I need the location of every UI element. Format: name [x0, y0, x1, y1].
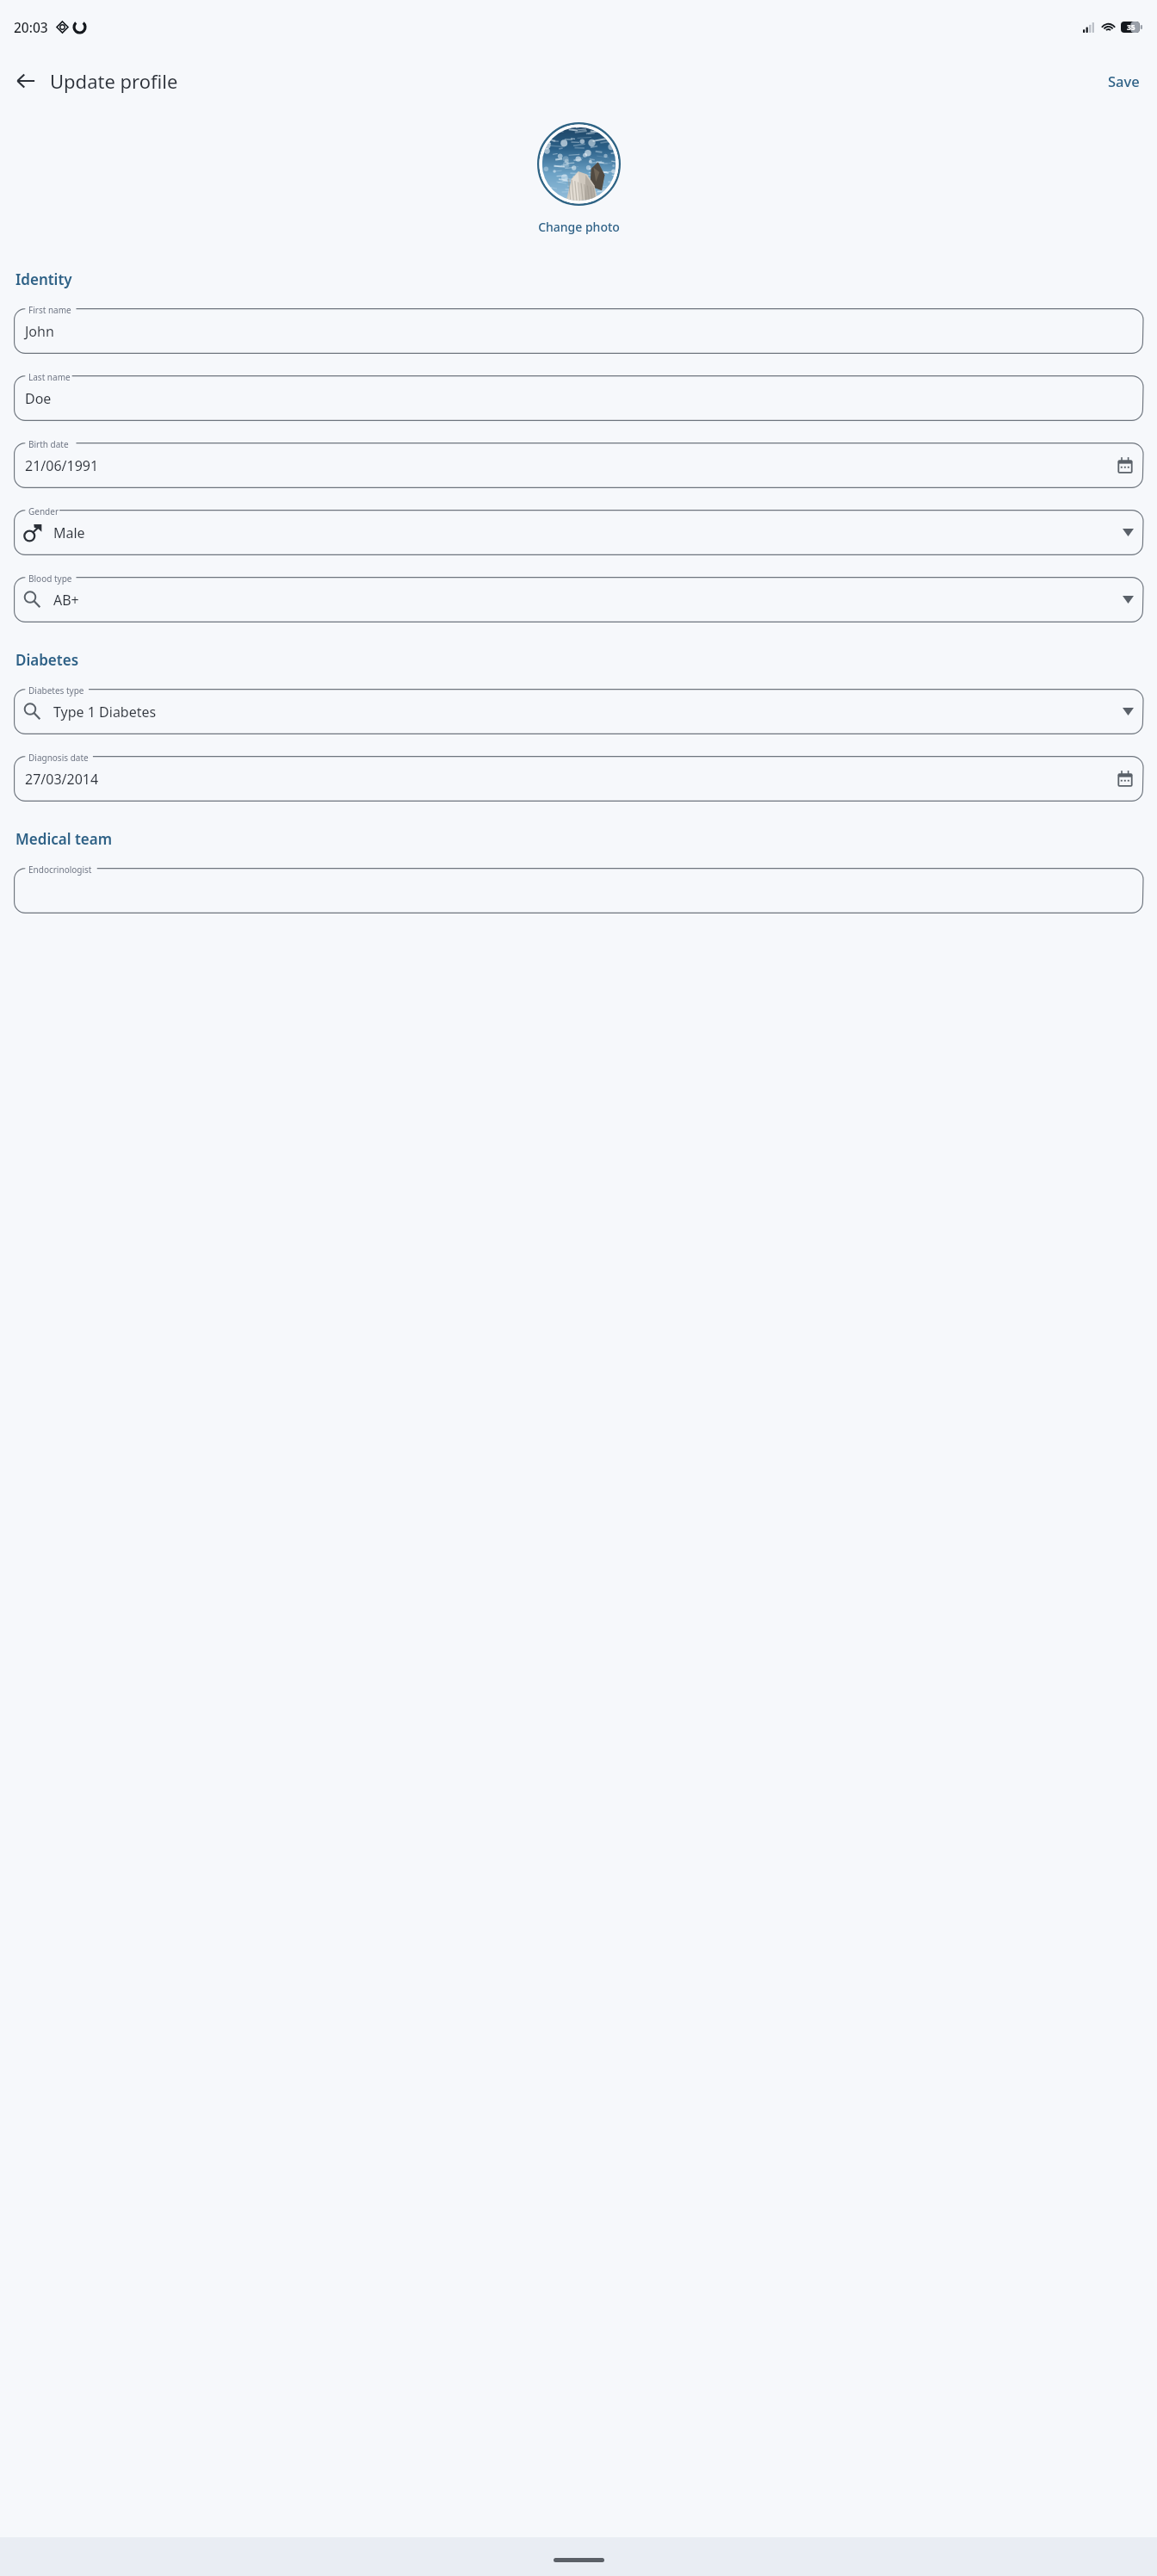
- staticText: Change photo: [538, 219, 620, 235]
- button[interactable]: Blood type: [14, 570, 1143, 622]
- staticText: 20:03: [14, 18, 48, 36]
- staticText: Blood type: [28, 573, 72, 585]
- staticText: Doe: [25, 389, 1134, 408]
- staticText: Medical team: [15, 829, 113, 849]
- button[interactable]: First name: [14, 301, 1143, 354]
- staticText: Update profile: [50, 68, 178, 94]
- button[interactable]: Save: [1099, 65, 1148, 97]
- staticText: Identity: [15, 269, 72, 289]
- staticText: Gender: [28, 505, 59, 517]
- staticText: Diabetes type: [28, 684, 84, 697]
- staticText: Endocrinologist: [28, 864, 92, 876]
- button[interactable]: Change photo: [531, 215, 627, 238]
- button[interactable]: Diagnosis date: [14, 749, 1143, 802]
- staticText: Birth date: [28, 438, 69, 450]
- staticText: Male: [53, 523, 1123, 542]
- staticText: John: [25, 322, 1134, 341]
- button[interactable]: Back: [5, 60, 46, 102]
- staticText: Type 1 Diabetes: [53, 703, 1123, 721]
- button[interactable]: Last name: [14, 368, 1143, 421]
- staticText: Last name: [28, 371, 71, 383]
- staticText: 21/06/1991: [25, 456, 1117, 475]
- button[interactable]: Gender: [14, 503, 1143, 555]
- button[interactable]: Birth date: [14, 436, 1143, 488]
- staticText: 27/03/2014: [25, 770, 1117, 789]
- staticText: AB+: [53, 591, 1123, 610]
- staticText: Save: [1108, 71, 1140, 90]
- staticText: Diabetes: [15, 650, 79, 670]
- staticText: 35: [1127, 22, 1135, 33]
- staticText: First name: [28, 304, 71, 316]
- button[interactable]: Endocrinologist: [14, 861, 1143, 913]
- button[interactable]: Diabetes type: [14, 682, 1143, 734]
- staticText: Diagnosis date: [28, 752, 89, 764]
